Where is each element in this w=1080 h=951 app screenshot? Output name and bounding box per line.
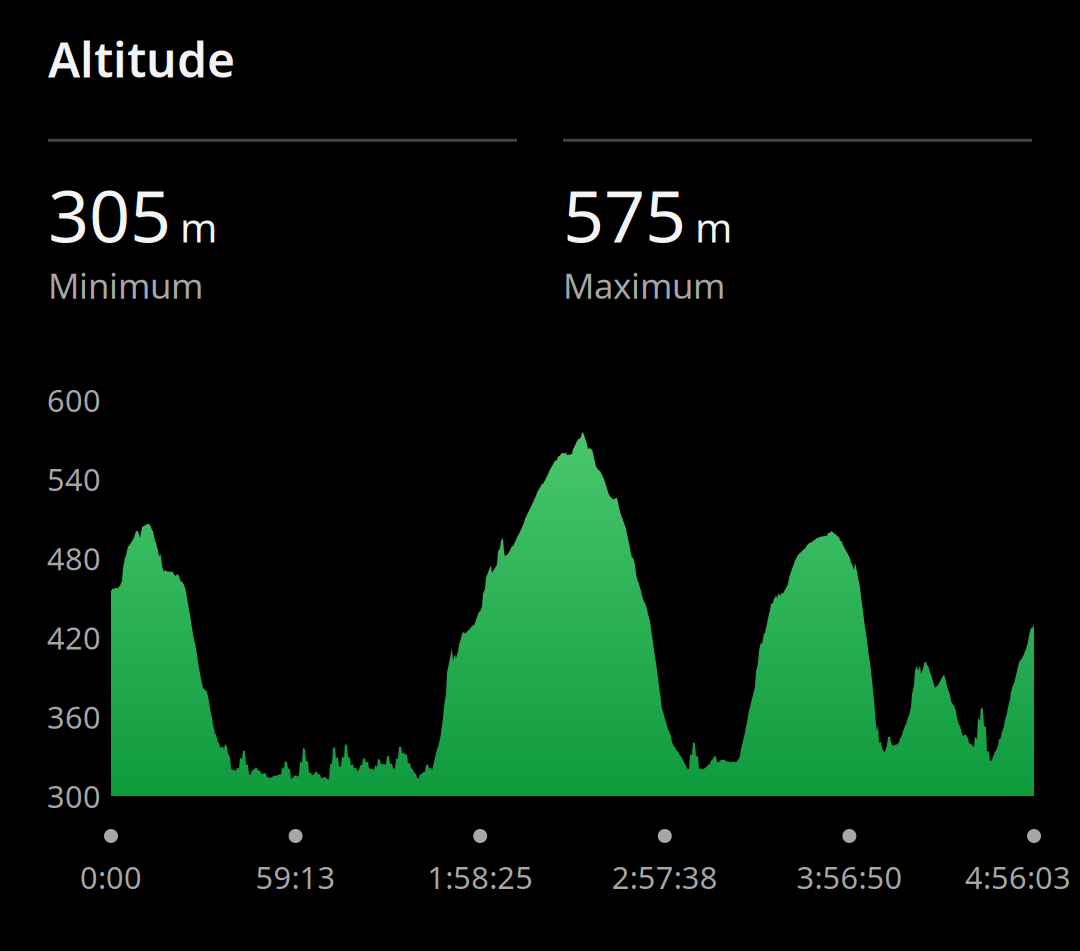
staticText: 575 <box>563 167 686 262</box>
staticText: Minimum <box>48 262 203 308</box>
staticText: 600 <box>47 380 101 420</box>
staticText: 540 <box>47 459 101 499</box>
staticText: 2:57:38 <box>612 857 718 897</box>
staticText: 420 <box>47 617 101 658</box>
staticText: m <box>180 200 217 253</box>
button[interactable]: Altitude, minimum 305 metres, maximum 57… <box>0 0 1080 951</box>
staticText: Maximum <box>563 262 725 308</box>
staticText: 4:56:03 <box>965 857 1071 897</box>
staticText: 59:13 <box>256 857 336 897</box>
staticText: 300 <box>47 776 101 816</box>
staticText: 0:00 <box>80 857 142 897</box>
staticText: 1:58:25 <box>427 857 533 897</box>
staticText: 305 <box>48 167 171 262</box>
staticText: Altitude <box>48 27 235 91</box>
staticText: 3:56:50 <box>796 857 902 897</box>
staticText: m <box>695 200 732 253</box>
staticText: 360 <box>47 696 101 737</box>
staticText: 480 <box>47 538 101 579</box>
